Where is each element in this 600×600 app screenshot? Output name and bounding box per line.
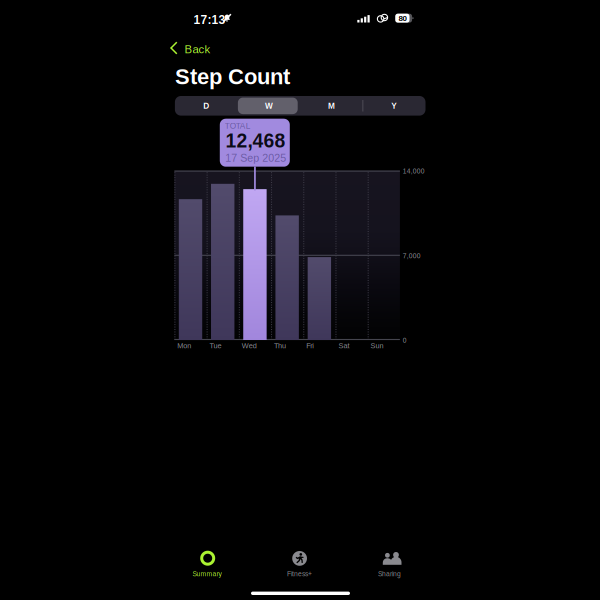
staticText: Thu	[274, 341, 286, 350]
staticText: Fitness+	[287, 570, 312, 578]
button[interactable]: Fitness+	[253, 540, 347, 580]
staticText: Summary	[192, 570, 221, 578]
staticText: Sat	[338, 341, 349, 350]
staticText: M	[328, 101, 335, 110]
staticText: 14,000	[403, 167, 425, 175]
button[interactable]: Y	[363, 96, 425, 116]
staticText: Step Count	[175, 64, 290, 89]
button[interactable]: Summary	[160, 540, 253, 580]
button[interactable]: Sharing	[347, 540, 440, 580]
staticText: Y	[391, 101, 397, 110]
staticText: 80	[399, 14, 407, 23]
staticText: Tue	[209, 341, 221, 350]
staticText: 12,468	[225, 130, 285, 152]
staticText: D	[203, 101, 209, 110]
button[interactable]: D	[175, 96, 237, 116]
staticText: Wed	[242, 341, 257, 350]
staticText: 0	[403, 337, 407, 344]
button[interactable]: Back	[170, 39, 226, 57]
staticText: 17:13	[193, 13, 225, 27]
staticText: 7,000	[403, 252, 421, 259]
staticText: 17 Sep 2025	[225, 152, 286, 164]
staticText: Mon	[177, 341, 191, 350]
button[interactable]: M	[300, 96, 363, 116]
staticText: Fri	[306, 341, 314, 350]
staticText: TOTAL	[225, 121, 251, 130]
staticText: Sharing	[378, 570, 401, 578]
button[interactable]: W	[238, 96, 300, 116]
staticText: W	[265, 101, 273, 110]
staticText: Sun	[371, 341, 384, 350]
staticText: Back	[184, 43, 210, 56]
